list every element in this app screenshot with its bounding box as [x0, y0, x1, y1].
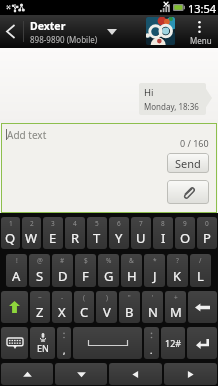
staticText: Monday, 18:36: [144, 101, 199, 112]
staticText: I: [161, 229, 166, 247]
button[interactable]: Up: [1, 363, 53, 385]
staticText: F: [82, 267, 89, 285]
staticText: X: [58, 303, 66, 321]
button[interactable]: Add text: [1, 123, 160, 213]
staticText: $: [84, 256, 88, 265]
staticText: C: [80, 303, 89, 321]
button[interactable]: ,: [57, 327, 71, 359]
button[interactable]: Switch keyboard: [1, 327, 28, 359]
button[interactable]: 1: [1, 217, 20, 249]
staticText: !: [16, 256, 18, 265]
button[interactable]: #: [52, 254, 73, 287]
button[interactable]: 6: [109, 217, 129, 249]
staticText: +: [174, 293, 178, 302]
staticText: Add text: [7, 128, 47, 142]
staticText: ": [128, 293, 131, 302]
staticText: 4: [73, 219, 77, 228]
button[interactable]: 3: [43, 217, 63, 249]
staticText: @: [37, 256, 43, 265]
staticText: B: [125, 303, 134, 321]
staticText: Dexter: [30, 19, 66, 33]
button[interactable]: Right: [164, 363, 217, 385]
staticText: ?: [176, 256, 179, 265]
staticText: #: [60, 256, 65, 265]
button[interactable]: %: [98, 254, 119, 287]
button[interactable]: Shift: [1, 291, 28, 323]
button[interactable]: EN: [30, 327, 55, 359]
button[interactable]: Space: [73, 327, 142, 359]
button[interactable]: .: [144, 327, 159, 359]
staticText: 13:54: [188, 1, 217, 16]
staticText: Z: [36, 303, 44, 321]
staticText: D: [58, 267, 68, 285]
staticText: G: [104, 267, 114, 285]
staticText: M: [170, 303, 182, 321]
staticText: 5: [95, 219, 99, 228]
button[interactable]: 7: [131, 217, 151, 249]
button[interactable]: ?: [167, 254, 188, 287]
button[interactable]: 4: [65, 217, 85, 249]
staticText: 12#: [165, 337, 182, 349]
button[interactable]: Contact photo: [146, 17, 175, 45]
staticText: Menu: [190, 35, 212, 46]
staticText: (: [83, 293, 85, 302]
button[interactable]: Menu: [178, 15, 218, 48]
staticText: L: [197, 267, 204, 285]
button[interactable]: &: [121, 254, 142, 287]
staticText: EN: [37, 342, 49, 354]
button[interactable]: 0: [197, 217, 217, 249]
button[interactable]: Back: [0, 15, 23, 48]
button[interactable]: Backspace: [188, 291, 217, 323]
button[interactable]: Left: [109, 363, 162, 385]
button[interactable]: Dexter: [24, 15, 123, 48]
staticText: *: [153, 256, 157, 265]
staticText: H: [127, 267, 137, 285]
staticText: /: [199, 256, 202, 265]
staticText: V: [103, 303, 111, 321]
button[interactable]: ): [96, 291, 117, 323]
button[interactable]: $: [75, 254, 96, 287]
button[interactable]: !: [6, 254, 27, 287]
button[interactable]: @: [29, 254, 50, 287]
staticText: R: [71, 229, 80, 247]
staticText: %: [106, 256, 112, 265]
button[interactable]: ': [142, 291, 163, 323]
staticText: ,: [63, 344, 66, 356]
button[interactable]: Enter: [187, 327, 217, 359]
staticText: 9: [183, 219, 187, 228]
staticText: Send: [175, 156, 201, 171]
staticText: ': [152, 293, 154, 302]
staticText: N: [148, 303, 158, 321]
staticText: 898-9890 (Mobile): [30, 34, 98, 45]
staticText: O: [180, 229, 191, 247]
button[interactable]: *: [144, 254, 165, 287]
button[interactable]: Send: [167, 153, 209, 173]
staticText: 6: [117, 219, 121, 228]
button[interactable]: +: [165, 291, 186, 323]
button[interactable]: 5: [87, 217, 107, 249]
button[interactable]: 12#: [161, 327, 185, 359]
button[interactable]: 2: [22, 217, 41, 249]
staticText: &: [129, 256, 134, 265]
staticText: 2: [30, 219, 34, 228]
staticText: J: [153, 267, 157, 285]
staticText: A: [12, 267, 21, 285]
button[interactable]: ": [119, 291, 140, 323]
staticText: E: [49, 229, 57, 247]
button[interactable]: -: [52, 291, 72, 323]
button[interactable]: 8: [153, 217, 173, 249]
staticText: 0 / 160: [180, 137, 209, 149]
staticText: Q: [5, 229, 16, 247]
button[interactable]: (: [74, 291, 94, 323]
button[interactable]: Attach: [167, 180, 209, 204]
button[interactable]: 9: [175, 217, 195, 249]
staticText: ): [106, 293, 108, 302]
button[interactable]: Down: [55, 363, 107, 385]
staticText: Hi: [144, 86, 154, 99]
button[interactable]: ~: [30, 291, 50, 323]
staticText: 3: [51, 219, 55, 228]
staticText: 1: [9, 219, 13, 228]
staticText: ~: [38, 293, 42, 302]
staticText: 7: [139, 219, 143, 228]
button[interactable]: /: [190, 254, 211, 287]
